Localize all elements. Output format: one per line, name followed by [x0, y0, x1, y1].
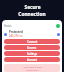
- staticText: Status: [4, 24, 12, 28]
- button[interactable]: Protected: [4, 30, 60, 38]
- staticText: Protected: [9, 30, 23, 34]
- staticText: Account: [27, 58, 38, 62]
- staticText: Servers: [27, 46, 37, 50]
- staticText: Connect: [27, 40, 38, 44]
- button[interactable]: Status: [4, 23, 60, 28]
- button[interactable]: Connect: [4, 39, 60, 44]
- button[interactable]: Account: [4, 57, 60, 62]
- staticText: Secure: [24, 4, 41, 11]
- button[interactable]: Settings: [4, 51, 60, 56]
- staticText: Connection: [18, 11, 46, 18]
- staticText: Settings: [27, 52, 38, 56]
- button[interactable]: Your data is safe: [4, 64, 60, 72]
- button[interactable]: Servers: [4, 45, 60, 50]
- staticText: Your data is safe: [23, 65, 42, 68]
- staticText: end to end: [26, 68, 39, 71]
- staticText: AES-256 on: [9, 34, 23, 38]
